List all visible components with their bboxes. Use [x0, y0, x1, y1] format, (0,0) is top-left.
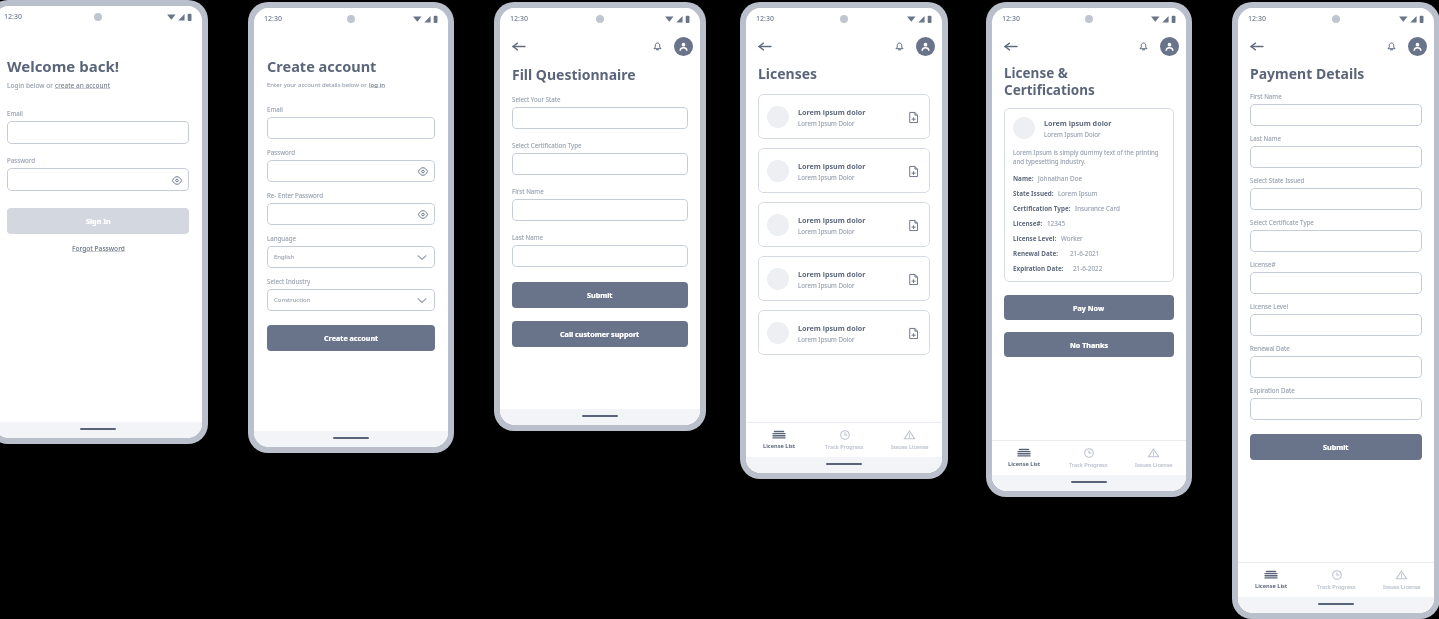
button[interactable]: Show password — [267, 203, 435, 225]
button[interactable]: Add document — [905, 325, 921, 341]
staticText: Construction — [274, 296, 311, 304]
staticText: Fill Questionnaire — [512, 65, 636, 84]
staticText: Lorem Ipsum Dolor — [798, 119, 855, 127]
staticText: License List — [1255, 582, 1288, 590]
button[interactable]: Track Progress — [812, 423, 877, 457]
button[interactable]: Submit — [512, 282, 688, 308]
button[interactable]: Issues License — [877, 423, 942, 457]
button[interactable] — [1250, 104, 1422, 126]
staticText: 12:30 — [756, 14, 774, 24]
button[interactable] — [512, 153, 688, 175]
staticText: Licenses — [758, 64, 818, 83]
button[interactable]: Track Progress — [1056, 441, 1121, 475]
staticText: Login below or — [7, 81, 55, 90]
button[interactable]: Issues License — [1369, 563, 1434, 597]
button[interactable] — [7, 121, 189, 144]
button[interactable]: Construction — [267, 289, 435, 311]
staticText: Last Name — [1250, 134, 1281, 142]
button[interactable]: Profile — [1160, 37, 1179, 56]
staticText: Create account — [267, 56, 377, 76]
button[interactable] — [1250, 272, 1422, 294]
button[interactable]: Show password — [267, 160, 435, 182]
button[interactable]: Issues License — [1121, 441, 1186, 475]
staticText: Issues License — [1135, 461, 1173, 469]
staticText: Johnathan Doe — [1038, 174, 1083, 183]
staticText: 12:30 — [4, 12, 22, 22]
button[interactable]: Notifications — [1133, 36, 1153, 56]
button[interactable]: Create account — [267, 325, 435, 351]
button[interactable]: Add document — [905, 217, 921, 233]
staticText: Expiration Date: — [1013, 264, 1064, 273]
staticText: Lorem ipsum dolor — [798, 323, 866, 333]
button[interactable]: Back — [998, 34, 1022, 58]
button[interactable] — [1250, 146, 1422, 168]
button[interactable]: Add document — [905, 109, 921, 125]
button[interactable]: Profile — [674, 37, 693, 56]
button[interactable]: License List — [992, 441, 1056, 475]
staticText: Password — [7, 156, 35, 164]
staticText: English — [274, 253, 295, 261]
other: Show password — [417, 208, 429, 220]
staticText: Pay Now — [1073, 303, 1105, 313]
staticText: Expiration Date — [1250, 386, 1295, 394]
button[interactable]: Back — [506, 34, 530, 58]
button[interactable]: create an account — [55, 81, 111, 90]
staticText: Welcome back! — [7, 56, 119, 76]
staticText: Lorem ipsum dolor — [798, 161, 866, 171]
staticText: License#: — [1013, 219, 1043, 228]
button[interactable] — [1250, 356, 1422, 378]
staticText: Select Certification Type — [512, 141, 582, 149]
button[interactable]: Profile — [916, 37, 935, 56]
button[interactable] — [267, 117, 435, 139]
staticText: Create account — [324, 333, 379, 343]
button[interactable]: Notifications — [889, 36, 909, 56]
staticText: License List — [763, 442, 796, 450]
staticText: License Level — [1250, 302, 1289, 310]
button[interactable]: License List — [746, 423, 812, 457]
button[interactable]: English — [267, 246, 435, 268]
button[interactable]: Track Progress — [1304, 563, 1369, 597]
button[interactable]: Add document — [905, 163, 921, 179]
button[interactable] — [1250, 230, 1422, 252]
staticText: Sign In — [86, 216, 111, 226]
staticText: Issues License — [891, 443, 929, 451]
button[interactable]: Add document — [905, 271, 921, 287]
staticText: Lorem Ipsum Dolor — [798, 281, 855, 289]
button[interactable]: Back — [1244, 34, 1268, 58]
button[interactable]: log in — [369, 81, 385, 89]
staticText: License & Certifications — [1004, 64, 1095, 99]
button[interactable]: Lorem ipsum dolor — [758, 202, 930, 247]
button[interactable]: Call customer support — [512, 321, 688, 347]
staticText: 12:30 — [1248, 14, 1266, 24]
button[interactable]: License List — [1238, 563, 1304, 597]
button[interactable]: Profile — [1408, 37, 1427, 56]
button[interactable]: Sign In — [7, 208, 189, 234]
staticText: Lorem ipsum dolor — [798, 215, 866, 225]
staticText: Select State Issued — [1250, 176, 1305, 184]
button[interactable] — [1250, 314, 1422, 336]
staticText: Email — [7, 109, 23, 117]
staticText: 12:30 — [264, 14, 282, 24]
button[interactable] — [512, 245, 688, 267]
button[interactable] — [512, 107, 688, 129]
button[interactable]: No Thanks — [1004, 332, 1174, 357]
button[interactable]: Lorem ipsum dolor — [758, 148, 930, 193]
staticText: 12:30 — [510, 14, 528, 24]
button[interactable]: Back — [752, 34, 776, 58]
button[interactable]: Forgot Password — [72, 244, 125, 253]
button[interactable]: Lorem ipsum dolor — [758, 94, 930, 139]
button[interactable]: Lorem ipsum dolor — [758, 256, 930, 301]
button[interactable] — [512, 199, 688, 221]
staticText: Worker — [1061, 234, 1083, 243]
button[interactable]: Show password — [7, 168, 189, 191]
button[interactable]: Pay Now — [1004, 295, 1174, 320]
staticText: Last Name — [512, 233, 543, 241]
button[interactable]: Notifications — [1381, 36, 1401, 56]
button[interactable]: Submit — [1250, 434, 1422, 460]
staticText: Submit — [1323, 442, 1349, 452]
button[interactable] — [1250, 398, 1422, 420]
button[interactable]: Lorem ipsum dolor — [758, 310, 930, 355]
button[interactable] — [1250, 188, 1422, 210]
staticText: First Name — [512, 187, 544, 195]
button[interactable]: Notifications — [647, 36, 667, 56]
